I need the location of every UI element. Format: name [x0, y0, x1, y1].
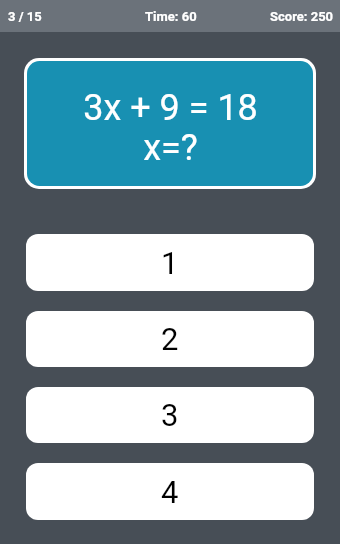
staticText: 2 — [161, 321, 179, 357]
button[interactable]: 4 — [26, 463, 314, 520]
button[interactable]: 3 — [26, 387, 314, 443]
staticText: Score: 250 — [270, 9, 334, 24]
staticText: 3 / 15 — [8, 9, 42, 24]
button[interactable]: 1 — [26, 234, 314, 291]
staticText: Time: 60 — [145, 9, 197, 24]
staticText: 1 — [161, 245, 179, 281]
staticText: 3 — [161, 397, 179, 433]
button[interactable]: 2 — [26, 311, 314, 367]
staticText: 3x + 9 = 18 x=? — [83, 87, 258, 169]
staticText: 4 — [161, 474, 179, 510]
